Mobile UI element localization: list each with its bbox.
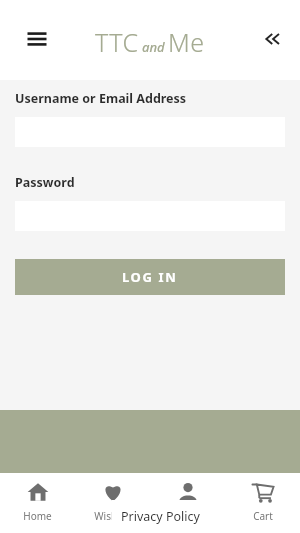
- staticText: Home: [23, 509, 52, 523]
- button[interactable]: Menu: [24, 26, 50, 52]
- staticText: TTC: [95, 25, 139, 59]
- button[interactable]: Collapse: [258, 27, 284, 53]
- staticText: Account: [168, 509, 207, 523]
- button[interactable]: TTC: [95, 25, 205, 59]
- staticText: and: [142, 38, 165, 56]
- button[interactable]: LOG IN: [15, 259, 285, 295]
- button[interactable]: Home: [0, 473, 75, 533]
- button[interactable]: Account: [150, 473, 225, 533]
- staticText: LOG IN: [122, 268, 178, 286]
- button[interactable]: Cart: [225, 473, 300, 533]
- staticText: Wishlist: [94, 509, 131, 523]
- staticText: Privacy Policy: [121, 508, 200, 525]
- button[interactable]: Privacy Policy: [112, 500, 208, 533]
- button[interactable]: Wishlist: [75, 473, 150, 533]
- staticText: Password: [15, 174, 75, 191]
- staticText: Cart: [253, 509, 273, 523]
- staticText: Username or Email Address: [15, 90, 187, 107]
- staticText: Me: [168, 25, 205, 59]
